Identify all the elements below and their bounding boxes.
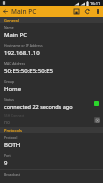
staticText: Port (4, 153, 11, 158)
staticText: Broadcast (4, 172, 20, 177)
button[interactable]: Hostname or IP Address (0, 41, 103, 59)
staticText: Group (4, 79, 15, 84)
staticText: 9 (4, 159, 8, 167)
staticText: 16:11 (90, 1, 101, 6)
button[interactable]: Broadcast (0, 170, 103, 183)
staticText: Status (4, 97, 14, 102)
staticText: BOTH (4, 141, 21, 149)
button[interactable]: Connect (94, 117, 100, 123)
button[interactable]: Status (0, 95, 103, 112)
staticText: 50:E5:50:E5:50:E5 (4, 67, 53, 75)
button[interactable]: Port (0, 151, 103, 169)
staticText: Name (4, 25, 14, 30)
staticText: Protocols (4, 128, 22, 133)
button[interactable]: More options (93, 7, 102, 16)
button[interactable]: MAC Address (0, 59, 103, 77)
button[interactable]: Name (0, 23, 103, 41)
other: Online (94, 101, 99, 106)
staticText: Hostname or IP Address (4, 43, 43, 48)
button[interactable]: SSH Connect (0, 112, 103, 127)
button[interactable]: Protocol (0, 133, 103, 151)
button[interactable]: Save (71, 6, 82, 17)
staticText: connected 22 seconds ago (4, 103, 73, 110)
staticText: Main PC (11, 7, 71, 16)
staticText: 192.168.1.10 (4, 49, 40, 57)
staticText: MAC Address (4, 61, 26, 66)
button[interactable]: Group (0, 77, 103, 95)
staticText: Home (4, 85, 22, 93)
button[interactable]: Refresh (82, 6, 93, 17)
staticText: SSH Connect (4, 113, 25, 118)
staticText: General (4, 18, 19, 23)
staticText: no (4, 119, 11, 126)
staticText: Main PC (4, 31, 28, 39)
button[interactable]: Back (0, 6, 11, 17)
staticText: Protocol (4, 135, 18, 140)
